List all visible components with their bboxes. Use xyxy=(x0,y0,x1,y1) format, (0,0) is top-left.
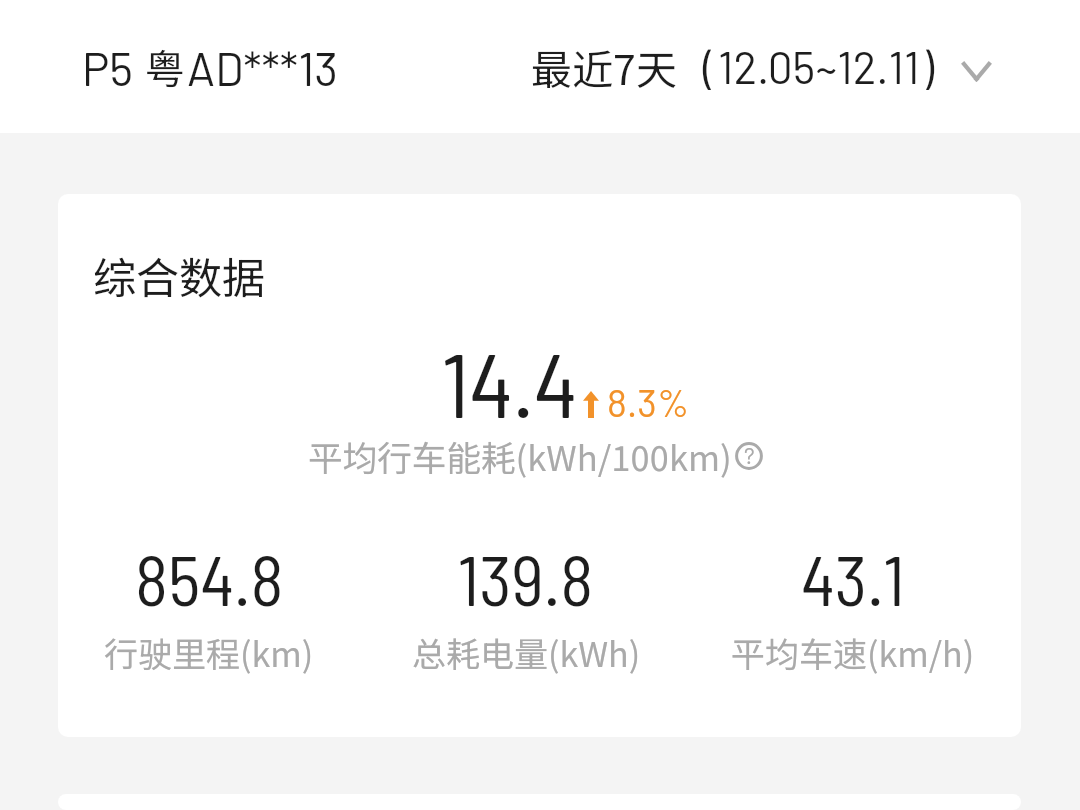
staticText: 14.4 xyxy=(442,328,578,436)
staticText: 总耗电量(kWh) xyxy=(412,628,641,677)
button[interactable]: 综合数据 xyxy=(58,194,1021,737)
staticText: 粤 xyxy=(145,38,185,96)
staticText: 12.05~12.11 xyxy=(718,40,920,93)
button[interactable]: 最近7天 xyxy=(531,37,991,96)
other: Trend up xyxy=(583,391,599,418)
staticText: 最近7天 xyxy=(531,37,677,96)
staticText: ) xyxy=(922,39,935,94)
staticText: AD***13 xyxy=(187,40,338,95)
staticText: 行驶里程(km) xyxy=(104,628,314,677)
button[interactable]: P5 xyxy=(82,38,338,96)
staticText: 43.1 xyxy=(801,536,905,620)
button[interactable]: About average energy consumption xyxy=(735,442,763,470)
button[interactable]: 854.8 xyxy=(59,536,359,677)
staticText: 平均车速(km/h) xyxy=(731,628,975,677)
staticText: 139.8 xyxy=(458,536,594,620)
staticText: ( xyxy=(703,39,716,94)
other: Change date range xyxy=(962,62,991,81)
staticText: 854.8 xyxy=(135,536,284,620)
staticText: 综合数据 xyxy=(93,244,265,306)
staticText: 平均行车能耗(kWh/100km) xyxy=(308,431,732,481)
staticText: P5 xyxy=(82,40,133,95)
button[interactable]: 43.1 xyxy=(703,536,1003,677)
button[interactable]: 139.8 xyxy=(376,536,676,677)
staticText: 8.3% xyxy=(607,379,690,425)
staticText: ? xyxy=(744,441,755,469)
